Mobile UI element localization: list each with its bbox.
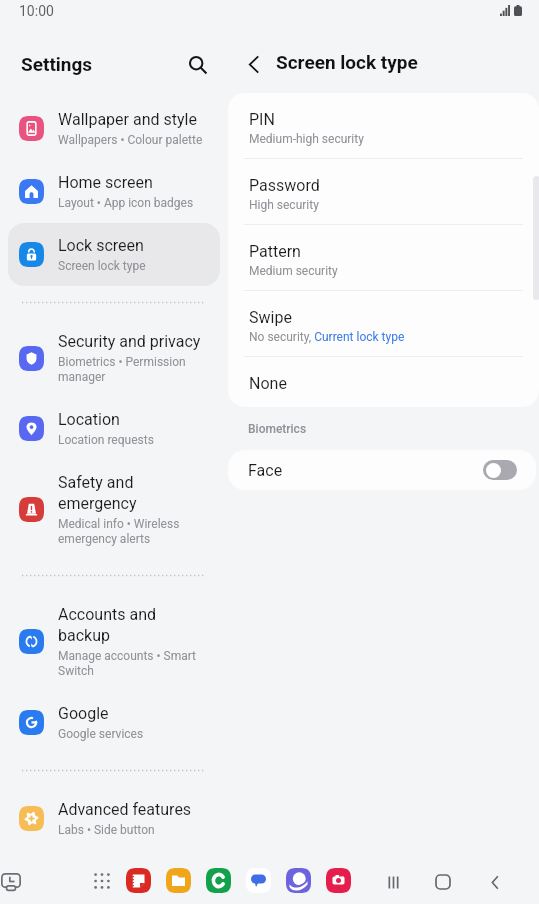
staticText: High security: [249, 198, 319, 212]
staticText: Accounts and backup: [58, 605, 205, 645]
staticText: Medium-high security: [249, 132, 364, 146]
button[interactable]: Google: [8, 691, 220, 754]
staticText: Advanced features: [58, 800, 192, 819]
button[interactable]: Search: [181, 48, 215, 82]
staticText: Face: [248, 461, 283, 480]
staticText: Settings: [21, 53, 93, 75]
button[interactable]: My Files: [166, 868, 191, 893]
staticText: Wallpaper and style: [58, 110, 197, 129]
staticText: Medical info • Wireless emergency alerts: [58, 517, 205, 546]
button[interactable]: Messages: [246, 868, 271, 893]
button[interactable]: Face: [228, 450, 536, 490]
button[interactable]: Taskbar: [0, 865, 27, 897]
staticText: Swipe: [249, 308, 292, 327]
button[interactable]: Home screen: [8, 160, 220, 223]
button[interactable]: Advanced features: [8, 787, 220, 850]
staticText: Password: [249, 176, 320, 195]
staticText: Safety and emergency: [58, 473, 205, 513]
staticText: Lock screen: [58, 236, 144, 255]
staticText: 10:00: [19, 3, 54, 19]
staticText: PIN: [249, 110, 275, 129]
button[interactable]: Security and privacy: [8, 319, 220, 397]
staticText: Wallpapers • Colour palette: [58, 133, 203, 147]
staticText: Google: [58, 704, 109, 723]
staticText: Manage accounts • Smart Switch: [58, 649, 205, 678]
button[interactable]: Apps: [87, 866, 117, 896]
staticText: None: [249, 374, 287, 393]
button[interactable]: PIN: [228, 93, 539, 159]
button[interactable]: Password: [228, 159, 539, 225]
button[interactable]: Location: [8, 397, 220, 460]
staticText: Home screen: [58, 173, 153, 192]
button[interactable]: Wallpaper and style: [8, 97, 220, 160]
button[interactable]: Pattern: [228, 225, 539, 291]
staticText: Biometrics • Permission manager: [58, 355, 205, 384]
button[interactable]: Swipe: [228, 291, 539, 357]
button[interactable]: Recents: [377, 866, 409, 898]
button[interactable]: Internet: [286, 868, 311, 893]
staticText: Screen lock type: [276, 51, 418, 73]
staticText: Medium security: [249, 264, 338, 278]
staticText: Pattern: [249, 242, 301, 261]
button[interactable]: Lock screen: [8, 223, 220, 286]
button[interactable]: Home: [427, 866, 459, 898]
staticText: Labs • Side button: [58, 823, 155, 837]
staticText: Security and privacy: [58, 332, 201, 351]
staticText: Layout • App icon badges: [58, 196, 194, 210]
staticText: Location requests: [58, 433, 154, 447]
staticText: Google services: [58, 727, 144, 741]
button[interactable]: Camera: [326, 868, 351, 893]
button[interactable]: Accounts and backup: [8, 592, 220, 691]
button[interactable]: None: [228, 357, 539, 407]
button[interactable]: Back: [479, 866, 511, 898]
staticText: Screen lock type: [58, 259, 146, 273]
button[interactable]: Phone: [206, 868, 231, 893]
staticText: Biometrics: [248, 422, 307, 436]
staticText: Location: [58, 410, 120, 429]
staticText: No security, Current lock type: [249, 330, 405, 344]
button[interactable]: Safety and emergency: [8, 460, 220, 559]
button[interactable]: Samsung Notes: [126, 868, 151, 893]
button[interactable]: Back: [237, 47, 271, 81]
